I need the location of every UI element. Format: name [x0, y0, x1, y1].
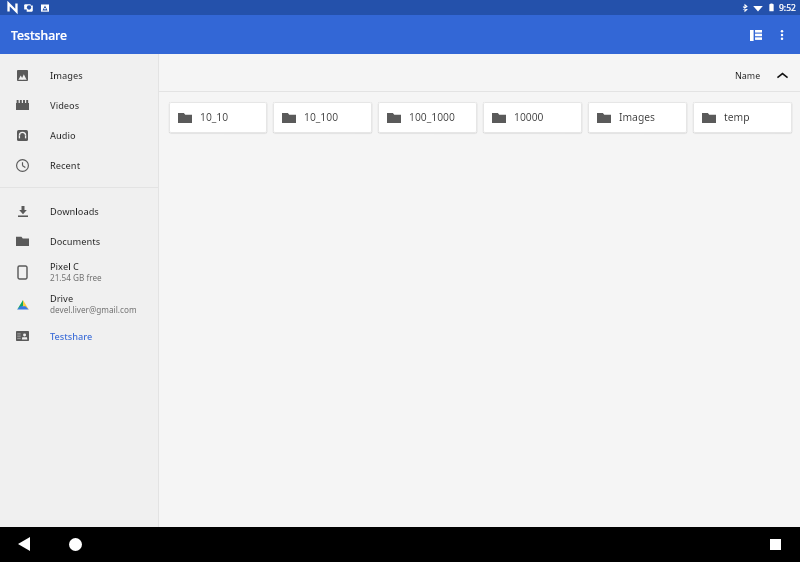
- staticText: Pixel C: [50, 260, 79, 273]
- button[interactable]: Back: [11, 532, 37, 558]
- staticText: Testshare: [50, 330, 93, 343]
- staticText: Audio: [50, 129, 76, 142]
- staticText: Images: [619, 110, 655, 124]
- button[interactable]: Testshare: [0, 320, 158, 352]
- button[interactable]: List view: [737, 20, 767, 50]
- staticText: 21.54 GB free: [50, 272, 102, 283]
- button[interactable]: Drive: [0, 288, 158, 320]
- button[interactable]: Recent: [0, 150, 158, 180]
- staticText: Drive: [50, 292, 74, 305]
- button[interactable]: Videos: [0, 90, 158, 120]
- staticText: Downloads: [50, 205, 99, 218]
- staticText: Name: [735, 70, 761, 82]
- staticText: 9:52: [779, 2, 796, 14]
- button[interactable]: 100_1000: [378, 102, 477, 133]
- button[interactable]: Downloads: [0, 196, 158, 226]
- staticText: devel.liver@gmail.com: [50, 304, 137, 315]
- staticText: Recent: [50, 159, 81, 172]
- staticText: Testshare: [11, 27, 68, 44]
- button[interactable]: temp: [693, 102, 792, 133]
- staticText: 10_10: [200, 110, 229, 124]
- button[interactable]: 10_10: [169, 102, 267, 133]
- staticText: Images: [50, 69, 83, 82]
- button[interactable]: Home: [62, 532, 88, 558]
- button[interactable]: 10000: [483, 102, 582, 133]
- button[interactable]: 10_100: [273, 102, 372, 133]
- button[interactable]: Recents: [762, 532, 788, 558]
- staticText: temp: [724, 110, 750, 124]
- button[interactable]: More options: [767, 20, 797, 50]
- staticText: 100_1000: [409, 110, 455, 124]
- staticText: Documents: [50, 235, 101, 248]
- button[interactable]: Audio: [0, 120, 158, 150]
- staticText: 10_100: [304, 110, 339, 124]
- button[interactable]: Pixel C: [0, 256, 158, 288]
- staticText: Videos: [50, 99, 80, 112]
- button[interactable]: Documents: [0, 226, 158, 256]
- staticText: 10000: [514, 110, 544, 124]
- button[interactable]: Images: [588, 102, 687, 133]
- button[interactable]: Name: [735, 67, 788, 79]
- button[interactable]: Images: [0, 60, 158, 90]
